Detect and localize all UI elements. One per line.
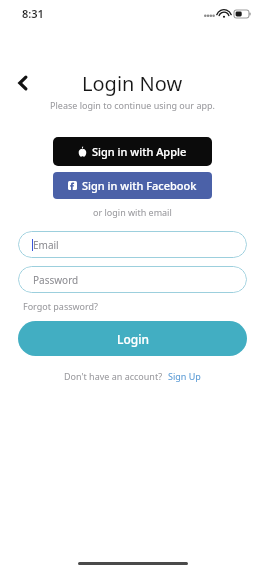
staticText: Sign in with Apple (92, 144, 187, 159)
button[interactable]: Sign in with Apple (53, 137, 212, 166)
staticText: Login (117, 331, 149, 347)
button[interactable]: Sign in with Facebook (53, 172, 212, 199)
staticText: Email (33, 238, 59, 252)
staticText: Login Now (82, 70, 183, 97)
staticText: Sign Up (168, 370, 201, 382)
staticText: Sign in with Facebook (82, 178, 197, 193)
staticText: Forgot password? (23, 300, 99, 312)
staticText: Please login to continue using our app. (0, 99, 265, 111)
button[interactable]: Password (18, 266, 247, 293)
staticText: 8:31 (22, 6, 44, 21)
staticText: Don't have an account? (64, 370, 163, 382)
staticText: Password (33, 273, 79, 287)
staticText: or login with email (93, 206, 172, 218)
button[interactable]: Login (18, 321, 247, 356)
button[interactable]: Sign Up (168, 370, 201, 382)
button[interactable]: Forgot password? (23, 300, 99, 312)
button[interactable]: Back (8, 68, 38, 98)
button[interactable]: Email (18, 231, 247, 258)
